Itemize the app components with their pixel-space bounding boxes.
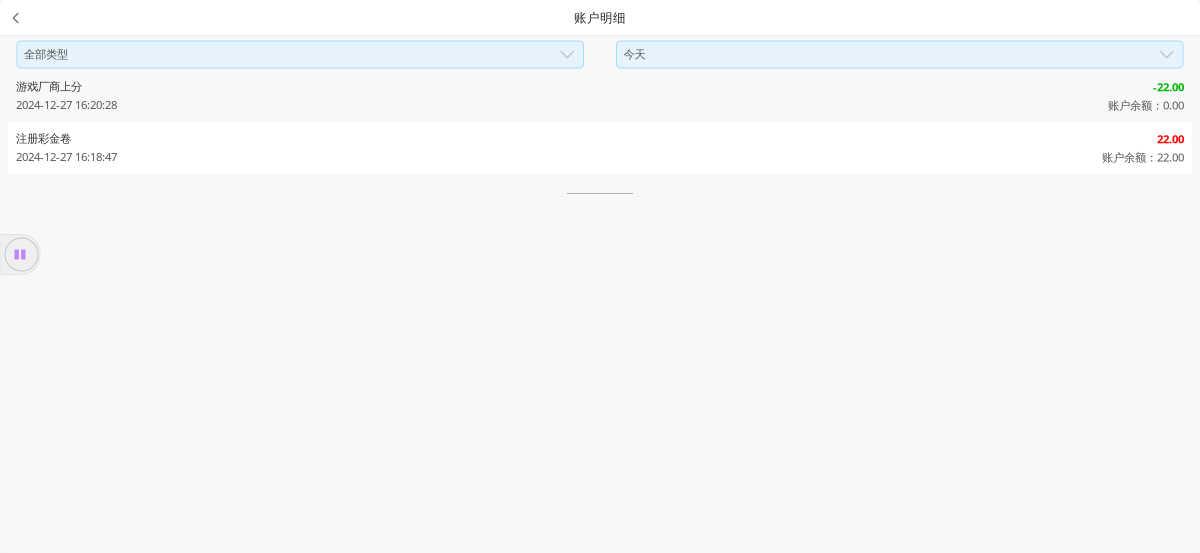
staticText: 游戏厂商上分 [16,80,82,94]
button[interactable]: 注册彩金卷 [8,122,1192,174]
staticText: -22.00 [1153,79,1184,94]
button[interactable]: 今天 [616,41,1183,68]
staticText: 注册彩金卷 [16,132,71,146]
button[interactable]: 全部类型 [17,41,583,68]
staticText: 今天 [623,47,645,62]
staticText: 账户明细 [574,10,626,26]
staticText: 2024-12-27 16:20:28 [16,97,117,112]
staticText: 2024-12-27 16:18:47 [16,149,117,164]
staticText: 全部类型 [24,47,68,62]
button[interactable]: Back [0,0,33,36]
staticText: 账户余额：22.00 [1102,149,1184,165]
staticText: 22.00 [1157,131,1184,146]
staticText: 账户余额：0.00 [1108,97,1184,113]
button[interactable]: 游戏厂商上分 [8,70,1192,122]
button[interactable]: Pause [0,234,40,274]
